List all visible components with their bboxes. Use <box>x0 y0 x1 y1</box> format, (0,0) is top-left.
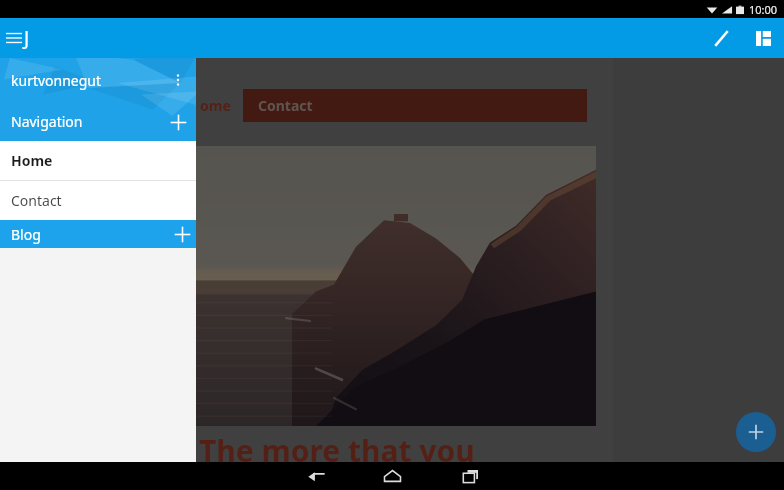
staticText: Contact <box>258 96 313 115</box>
staticText: 10:00 <box>749 2 778 17</box>
staticText: Blog <box>11 225 41 244</box>
button[interactable]: kurtvonnegut <box>0 58 196 102</box>
button[interactable]: Home <box>374 462 410 490</box>
staticText: ome <box>200 96 231 115</box>
button[interactable]: Navigation <box>0 102 196 141</box>
staticText: Navigation <box>11 112 83 131</box>
button[interactable]: Account options <box>160 62 196 98</box>
button[interactable]: Back <box>298 462 334 490</box>
staticText: kurtvonnegut <box>11 71 102 90</box>
button[interactable]: Add navigation item <box>160 104 196 140</box>
button[interactable]: Blog <box>0 220 196 248</box>
staticText: Contact <box>11 191 62 210</box>
button[interactable]: Open navigation drawer <box>0 18 34 58</box>
button[interactable]: Add <box>736 412 776 452</box>
staticText: Home <box>11 151 53 170</box>
button[interactable]: Edit <box>700 18 742 58</box>
button[interactable]: Home <box>0 141 196 180</box>
button[interactable]: Layout <box>742 18 784 58</box>
button[interactable]: Contact <box>243 89 587 122</box>
staticText: J <box>24 25 30 51</box>
button[interactable]: Recent apps <box>452 462 488 490</box>
button[interactable]: Add blog item <box>168 220 196 248</box>
button[interactable]: Contact <box>0 181 196 220</box>
staticText: The more that you <box>199 430 475 471</box>
